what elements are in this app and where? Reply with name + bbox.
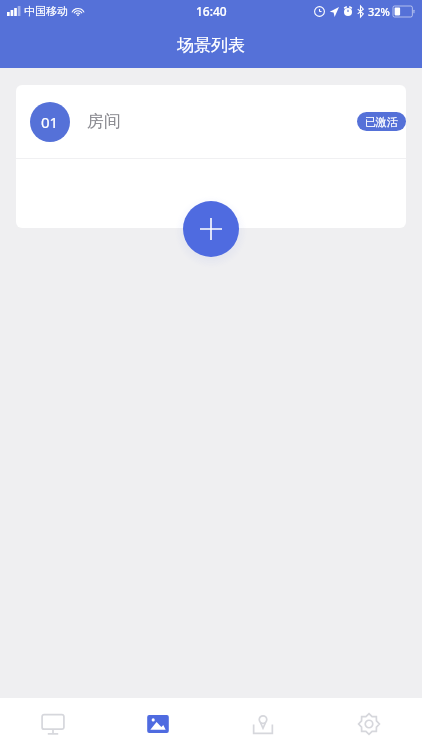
staticText: 中国移动 [24, 4, 68, 18]
staticText: 已激活 [365, 115, 398, 129]
button[interactable]: Settings [316, 698, 422, 750]
staticText: 场景列表 [177, 35, 245, 56]
button[interactable]: Location [210, 698, 316, 750]
button[interactable]: Scenes [105, 698, 210, 750]
button[interactable]: 01 [16, 85, 406, 158]
button[interactable]: 已激活 [357, 112, 406, 131]
staticText: 32% [368, 4, 390, 19]
button[interactable]: Add scene [183, 201, 239, 257]
button[interactable]: Monitor [0, 698, 105, 750]
staticText: 01 [41, 112, 59, 132]
staticText: 16:40 [196, 3, 227, 19]
staticText: 房间 [87, 111, 121, 132]
